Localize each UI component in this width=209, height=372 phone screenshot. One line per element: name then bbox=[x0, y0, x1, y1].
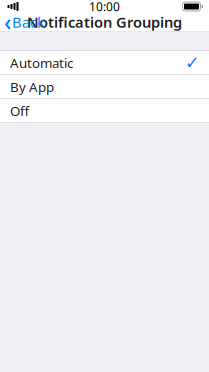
staticText: Off bbox=[10, 102, 29, 120]
staticText: Back bbox=[12, 12, 45, 32]
button[interactable]: Automatic bbox=[0, 51, 209, 74]
button[interactable]: By App bbox=[0, 75, 209, 98]
button[interactable]: ‹ bbox=[0, 13, 51, 31]
button[interactable]: Off bbox=[0, 99, 209, 122]
staticText: ✓ bbox=[185, 53, 200, 73]
staticText: Automatic bbox=[10, 54, 73, 72]
staticText: Notification Grouping bbox=[27, 12, 182, 32]
staticText: ‹ bbox=[4, 7, 11, 37]
staticText: By App bbox=[10, 78, 54, 96]
staticText: 10:00 bbox=[89, 0, 120, 14]
